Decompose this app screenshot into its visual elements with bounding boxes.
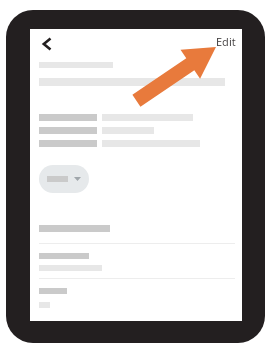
button[interactable]: Back: [34, 31, 60, 57]
staticText: Edit: [216, 34, 236, 49]
button[interactable]: Edit: [213, 31, 239, 52]
button[interactable]: [39, 165, 89, 193]
